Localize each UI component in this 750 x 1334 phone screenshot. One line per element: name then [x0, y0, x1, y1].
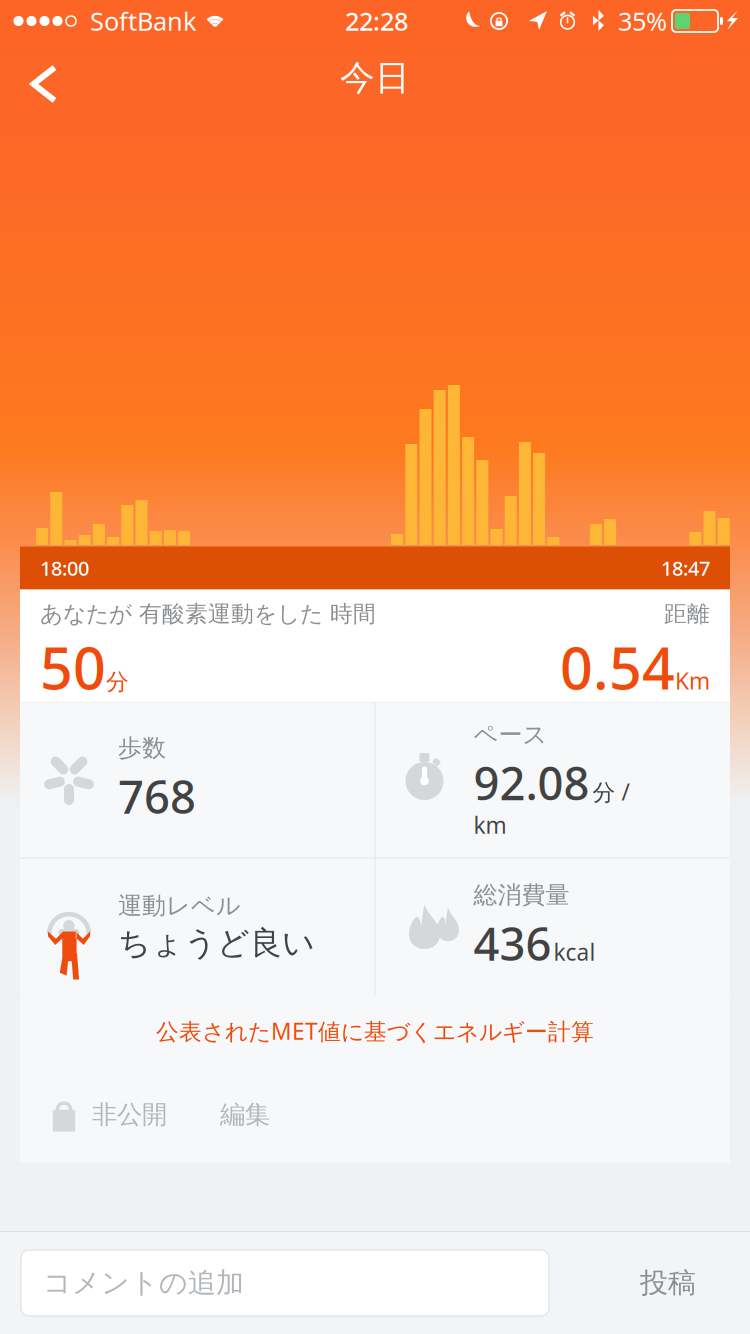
staticText: 50: [40, 628, 106, 706]
staticText: 運動レベル: [118, 891, 241, 921]
staticText: 0.54: [560, 628, 675, 706]
staticText: 公表されたMET値に基づくエネルギー計算: [156, 1016, 594, 1046]
staticText: 分 /: [592, 776, 629, 807]
staticText: 非公開: [92, 1098, 167, 1130]
staticText: コメントの追加: [43, 1265, 244, 1301]
button[interactable]: コメントの追加: [21, 1250, 549, 1316]
staticText: km: [473, 810, 506, 840]
staticText: 35%: [618, 4, 667, 38]
staticText: 距離: [664, 600, 710, 628]
staticText: 436: [473, 912, 551, 974]
staticText: ペース: [473, 720, 547, 750]
staticText: 歩数: [118, 733, 166, 763]
button[interactable]: 非公開: [20, 1066, 197, 1162]
staticText: Km: [675, 665, 710, 696]
staticText: 18:00: [40, 554, 89, 582]
button[interactable]: 戻る: [12, 52, 86, 116]
staticText: kcal: [553, 936, 595, 967]
staticText: 18:47: [661, 554, 710, 582]
staticText: 22:28: [345, 4, 408, 38]
staticText: ちょうど良い: [118, 923, 315, 963]
button[interactable]: 編集: [197, 1066, 293, 1162]
staticText: 編集: [220, 1098, 270, 1130]
staticText: 92.08: [473, 752, 589, 813]
staticText: 分: [106, 668, 129, 696]
staticText: 総消費量: [473, 880, 569, 910]
staticText: SoftBank: [90, 4, 197, 38]
staticText: あなたが 有酸素運動をした 時間: [40, 600, 376, 628]
staticText: 768: [118, 765, 196, 827]
staticText: 投稿: [640, 1265, 696, 1301]
button[interactable]: 投稿: [598, 1250, 738, 1316]
staticText: 今日: [340, 56, 410, 100]
